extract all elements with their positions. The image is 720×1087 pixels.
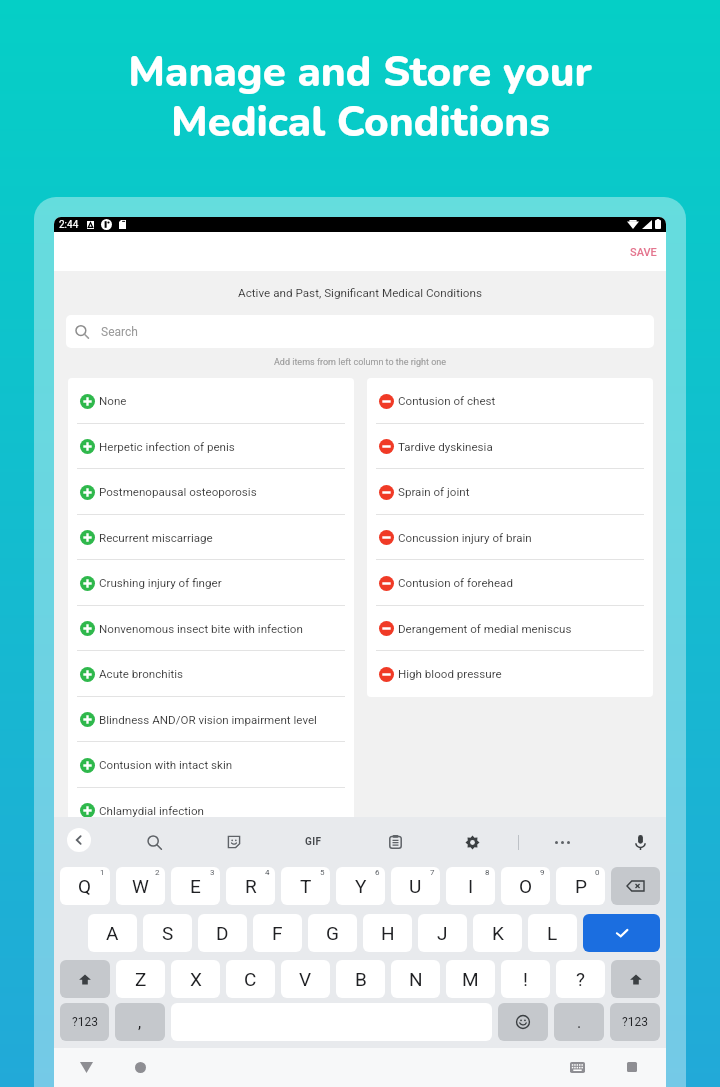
button[interactable]: Nonvenomous insect bite with infection [68, 606, 354, 651]
button[interactable]: O [501, 867, 550, 905]
button[interactable]: ! [501, 960, 550, 998]
other: Emoji [516, 1015, 530, 1029]
button[interactable]: Recurrent miscarriage [68, 515, 354, 560]
button[interactable]: . [554, 1003, 604, 1041]
button[interactable]: Keyboard [559, 1049, 595, 1085]
button[interactable]: Concussion injury of brain [367, 515, 653, 560]
button[interactable]: Derangement of medial meniscus [367, 606, 653, 651]
staticText: A [106, 922, 119, 944]
button[interactable]: T [281, 867, 330, 905]
staticText: Crushing injury of finger [99, 576, 222, 590]
other: Shift [78, 973, 92, 986]
button[interactable]: E [171, 867, 220, 905]
button[interactable]: Stickers [216, 824, 252, 860]
staticText: Contusion with intact skin [99, 758, 233, 772]
staticText: ? [576, 968, 585, 990]
button[interactable]: D [198, 914, 247, 952]
button[interactable]: S [143, 914, 192, 952]
staticText: Manage and Store your [128, 44, 592, 101]
button[interactable]: Emoji [498, 1003, 548, 1041]
button[interactable]: L [528, 914, 577, 952]
button[interactable]: Voice input [622, 824, 658, 860]
button[interactable]: Back [68, 1049, 104, 1085]
button[interactable]: Clipboard [377, 824, 413, 860]
button[interactable]: Crushing injury of finger [68, 560, 354, 606]
button[interactable]: ?123 [610, 1003, 660, 1041]
staticText: W [132, 875, 149, 897]
staticText: 5 [320, 868, 325, 877]
button[interactable]: Q [60, 867, 110, 905]
button[interactable]: More options [544, 824, 580, 860]
button[interactable]: F [253, 914, 302, 952]
button[interactable]: SAVE [616, 235, 666, 268]
staticText: Z [135, 968, 147, 990]
button[interactable]: Z [116, 960, 165, 998]
button[interactable]: A [88, 914, 137, 952]
staticText: 2 [155, 868, 160, 877]
staticText: K [492, 922, 504, 944]
button[interactable]: Acute bronchitis [68, 651, 354, 697]
button[interactable]: Recents [614, 1049, 650, 1085]
staticText: . [577, 1013, 582, 1032]
staticText: 4 [265, 868, 270, 877]
other: Shift [629, 973, 643, 986]
button[interactable]: Backspace [611, 867, 660, 905]
button[interactable]: R [226, 867, 275, 905]
button[interactable]: V [281, 960, 330, 998]
staticText: Herpetic infection of penis [99, 440, 235, 454]
button[interactable]: Y [336, 867, 385, 905]
staticText: V [299, 968, 312, 990]
button[interactable]: Home [122, 1049, 158, 1085]
button[interactable]: Shift [611, 960, 660, 998]
button[interactable]: GIF [295, 824, 331, 860]
button[interactable]: Enter [583, 914, 660, 952]
button[interactable]: G [308, 914, 357, 952]
button[interactable]: I [446, 867, 495, 905]
button[interactable]: Tardive dyskinesia [367, 424, 653, 469]
button[interactable]: Shift [60, 960, 110, 998]
button[interactable]: N [391, 960, 440, 998]
staticText: Y [355, 875, 367, 897]
button[interactable]: W [116, 867, 165, 905]
button[interactable]: Herpetic infection of penis [68, 424, 354, 469]
button[interactable]: , [115, 1003, 165, 1041]
other: Enter [614, 927, 630, 939]
staticText: Concussion injury of brain [398, 531, 532, 545]
button[interactable]: Blindness AND/OR vision impairment level [68, 697, 354, 742]
button[interactable]: Chlamydial infection [68, 788, 354, 833]
button[interactable]: Settings [454, 824, 490, 860]
staticText: B [355, 968, 367, 990]
button[interactable]: ? [556, 960, 605, 998]
button[interactable]: Contusion of chest [367, 378, 653, 424]
staticText: S [162, 922, 174, 944]
button[interactable]: X [171, 960, 220, 998]
staticText: Recurrent miscarriage [99, 531, 213, 545]
button[interactable]: H [363, 914, 412, 952]
button[interactable]: M [446, 960, 495, 998]
button[interactable]: K [473, 914, 522, 952]
staticText: None [99, 394, 127, 408]
staticText: 2:44 [59, 219, 79, 231]
staticText: O [519, 875, 533, 897]
button[interactable]: None [68, 378, 354, 424]
button[interactable]: Contusion with intact skin [68, 742, 354, 788]
button[interactable]: Contusion of forehead [367, 560, 653, 606]
staticText: F [272, 922, 283, 944]
button[interactable]: Sprain of joint [367, 469, 653, 515]
button[interactable]: Back [67, 828, 91, 852]
button[interactable]: High blood pressure [367, 651, 653, 697]
button[interactable]: Search [66, 315, 654, 348]
button[interactable]: U [391, 867, 440, 905]
button[interactable]: J [418, 914, 467, 952]
button[interactable]: Postmenopausal osteoporosis [68, 469, 354, 515]
staticText: M [462, 968, 479, 990]
staticText: 3 [210, 868, 215, 877]
button[interactable]: ?123 [60, 1003, 109, 1041]
button[interactable]: P [556, 867, 605, 905]
button[interactable]: B [336, 960, 385, 998]
other: Backspace [627, 880, 644, 892]
button[interactable]: Search [136, 824, 172, 860]
button[interactable]: C [226, 960, 275, 998]
staticText: Derangement of medial meniscus [398, 622, 572, 636]
